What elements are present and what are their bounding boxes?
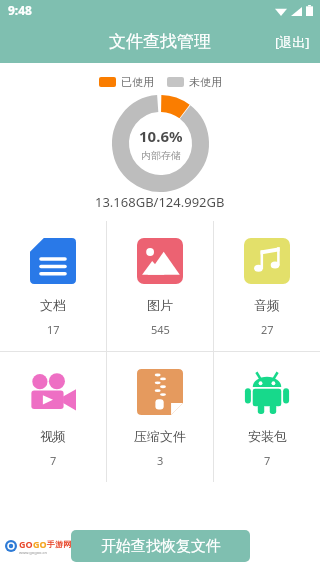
staticText: 27: [261, 322, 274, 337]
staticText: 文档: [40, 297, 66, 313]
staticText: 545: [151, 322, 170, 337]
staticText: 7: [264, 453, 271, 468]
staticText: 3: [157, 453, 164, 468]
staticText: 图片: [147, 297, 173, 313]
button[interactable]: 音频: [214, 221, 320, 351]
other: GOGO手游网: [4, 537, 71, 555]
button[interactable]: 开始查找恢复文件: [71, 530, 250, 562]
button[interactable]: [退出]: [265, 25, 320, 59]
staticText: 文件查找管理: [109, 31, 211, 52]
staticText: 视频: [40, 428, 66, 444]
staticText: 7: [50, 453, 57, 468]
staticText: 已使用: [121, 75, 154, 89]
staticText: GO: [19, 538, 33, 550]
staticText: 13.168GB/124.992GB: [95, 193, 225, 211]
button[interactable]: 压缩文件: [107, 352, 213, 482]
staticText: 内部存储: [141, 149, 181, 162]
staticText: 手游网: [47, 539, 71, 549]
staticText: 音频: [254, 297, 280, 313]
staticText: www.gogoo.cn: [19, 550, 47, 555]
button[interactable]: 视频: [0, 352, 106, 482]
staticText: 9:48: [8, 2, 32, 18]
staticText: GO: [33, 538, 47, 550]
staticText: 17: [47, 322, 60, 337]
button[interactable]: 安装包: [214, 352, 320, 482]
staticText: 压缩文件: [134, 428, 186, 444]
staticText: 未使用: [189, 75, 222, 89]
staticText: 开始查找恢复文件: [101, 537, 221, 556]
button[interactable]: 文档: [0, 221, 106, 351]
staticText: 安装包: [248, 428, 287, 444]
staticText: [退出]: [275, 33, 310, 51]
staticText: 10.6%: [139, 126, 183, 146]
button[interactable]: 图片: [107, 221, 213, 351]
